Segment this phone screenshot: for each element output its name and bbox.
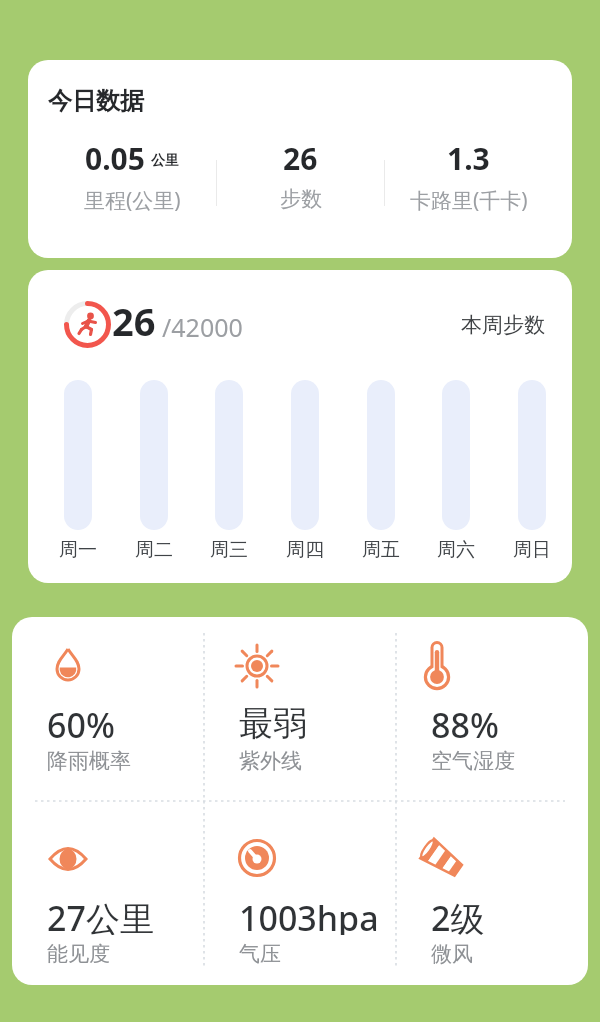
- button[interactable]: 1003hpa: [204, 801, 396, 985]
- staticText: 最弱: [239, 702, 307, 742]
- button[interactable]: 88%: [396, 617, 588, 801]
- staticText: 能见度: [47, 941, 110, 965]
- button[interactable]: 1.3: [385, 138, 552, 238]
- staticText: 2级: [431, 895, 485, 935]
- button[interactable]: 最弱: [204, 617, 396, 801]
- staticText: 周二: [135, 538, 173, 562]
- staticText: 卡路里(千卡): [410, 186, 528, 215]
- button[interactable]: 27公里: [12, 801, 204, 985]
- button[interactable]: 0.05: [48, 138, 216, 238]
- staticText: 空气湿度: [431, 748, 515, 772]
- staticText: 60%: [47, 702, 115, 742]
- staticText: 周三: [210, 538, 248, 562]
- staticText: 26: [283, 138, 318, 179]
- staticText: 步数: [280, 186, 322, 212]
- staticText: 微风: [431, 941, 473, 965]
- staticText: 周四: [286, 538, 324, 562]
- staticText: 周六: [437, 538, 475, 562]
- staticText: 1003hpa: [239, 895, 379, 935]
- staticText: 本周步数: [461, 312, 545, 338]
- button[interactable]: 26: [217, 138, 384, 238]
- staticText: 27公里: [47, 895, 154, 935]
- staticText: 紫外线: [239, 748, 302, 772]
- staticText: 88%: [431, 702, 499, 742]
- staticText: 里程(公里): [84, 186, 181, 215]
- button[interactable]: 60%: [12, 617, 204, 801]
- button[interactable]: 今日数据: [28, 60, 572, 258]
- staticText: 1.3: [447, 138, 490, 179]
- button[interactable]: 26: [28, 270, 572, 583]
- staticText: 周日: [513, 538, 551, 562]
- staticText: 降雨概率: [47, 748, 131, 772]
- staticText: 气压: [239, 941, 281, 965]
- staticText: /42000: [162, 310, 243, 344]
- staticText: 周五: [362, 538, 400, 562]
- staticText: 公里: [151, 152, 179, 170]
- staticText: 26: [112, 295, 156, 342]
- staticText: 周一: [59, 538, 97, 562]
- staticText: 0.05: [85, 138, 145, 179]
- button[interactable]: 2级: [396, 801, 588, 985]
- staticText: 今日数据: [48, 86, 144, 116]
